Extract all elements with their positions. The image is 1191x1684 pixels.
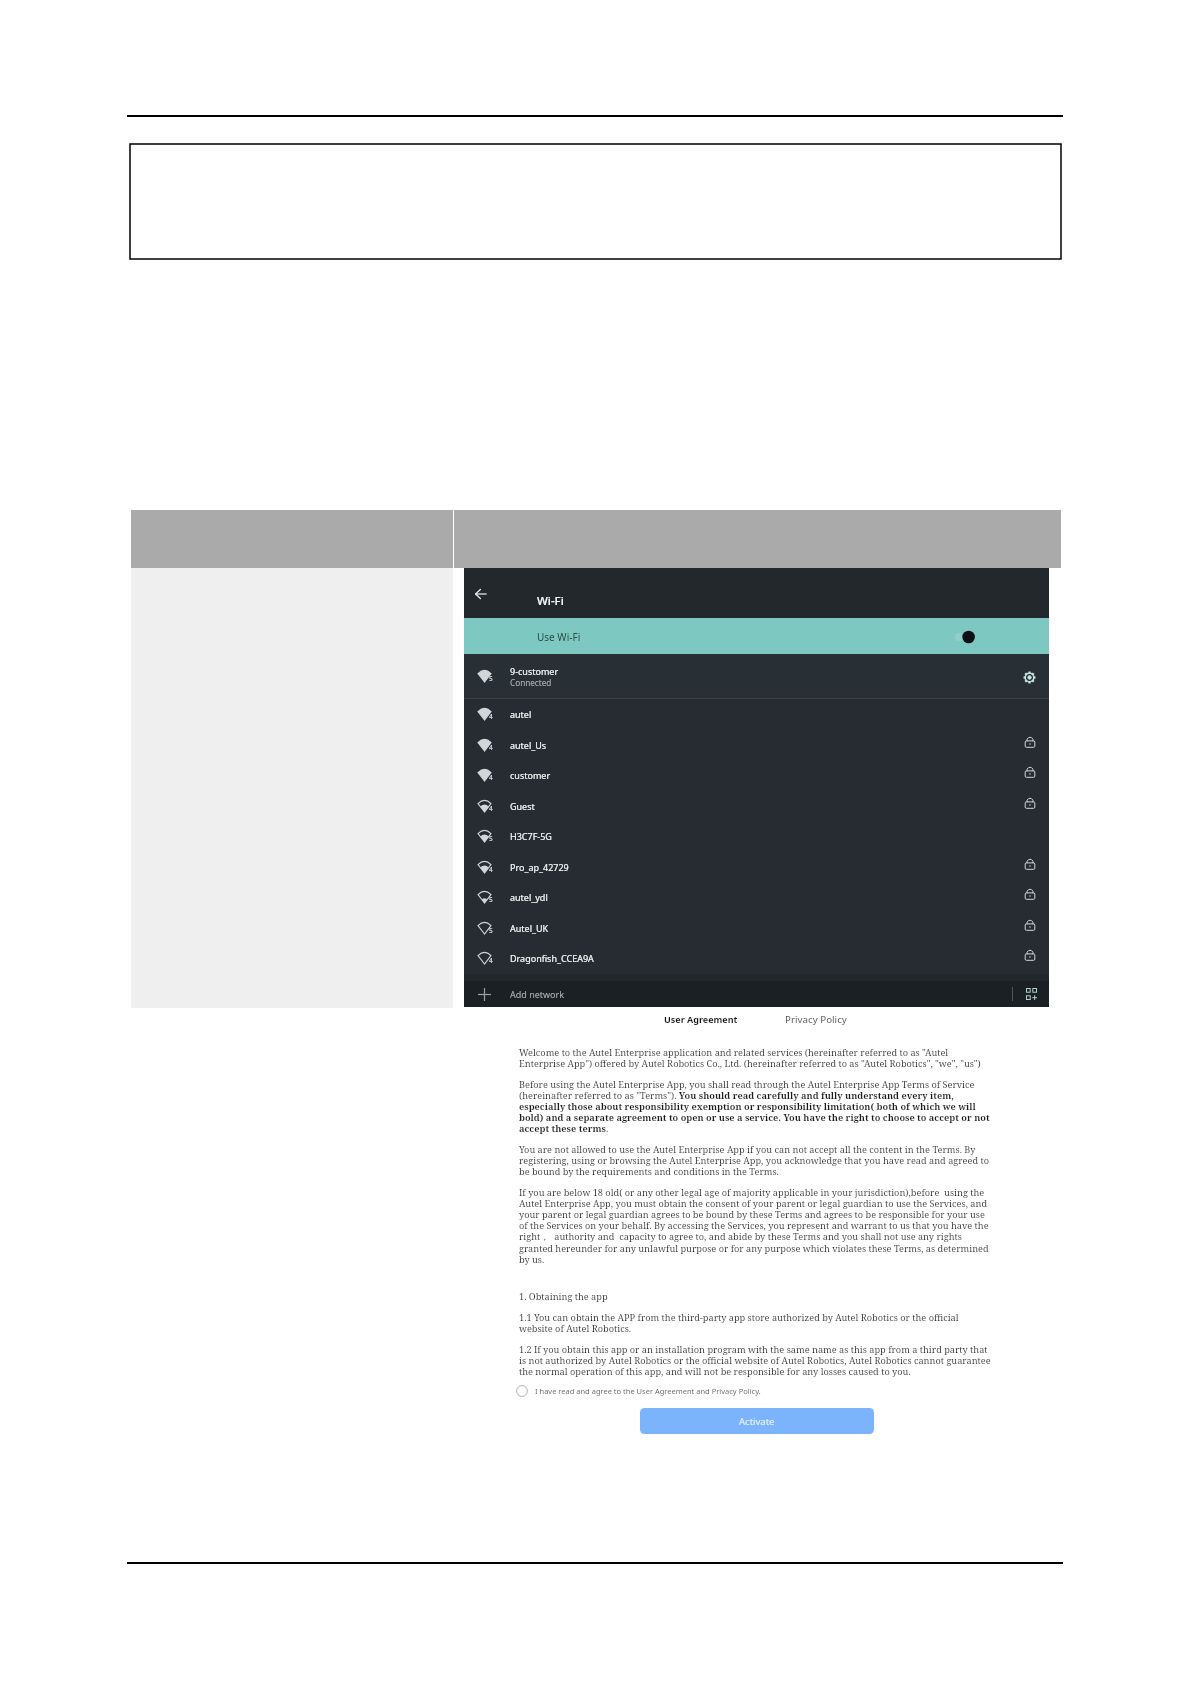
button[interactable]: I have read and agree to the User Agreem… [514,1383,763,1399]
staticText: autel_Us [510,739,547,751]
staticText: Use Wi-Fi [537,630,581,644]
staticText: 4 [489,804,493,813]
button[interactable]: User Agreement [659,1009,743,1029]
staticText: Dragonfish_CCEA9A [510,952,594,964]
staticText: 5 [489,834,493,843]
button[interactable]: 4 [464,730,1049,761]
staticText: 1.1 You can obtain the APP from the thir… [519,1311,991,1335]
button[interactable]: 5 [464,882,1049,913]
button[interactable]: Privacy Policy [780,1009,852,1030]
staticText: Wi-Fi [537,593,564,609]
staticText: Connected [510,677,552,688]
button[interactable]: 4 [464,791,1049,822]
staticText: Welcome to the Autel Enterprise applicat… [519,1046,991,1070]
button[interactable]: 4 [464,760,1049,791]
staticText: You are not allowed to use the Autel Ent… [519,1143,991,1178]
staticText: Before using the Autel Enterprise App, y… [519,1078,991,1135]
staticText: 1. Obtaining the app [519,1290,608,1303]
staticText: If you are below 18 old( or any other le… [519,1186,991,1266]
staticText: 5 [489,674,493,683]
button[interactable]: 4 [464,852,1049,883]
staticText: Add network [510,988,565,1000]
staticText: 9-customer [510,665,559,677]
button[interactable]: Network settings [1020,668,1039,687]
button[interactable]: Add network [464,981,1049,1007]
staticText: 5 [489,895,493,904]
staticText: 4 [489,865,493,874]
button[interactable]: Back [468,581,493,606]
staticText: I have read and agree to the User Agreem… [535,1386,761,1396]
button[interactable]: Use Wi-Fi [464,618,1049,654]
staticText: Pro_ap_42729 [510,861,569,873]
staticText: H3C7F-5G [510,830,552,842]
button[interactable]: Scan QR code [1024,987,1038,1001]
button[interactable]: Activate [640,1408,874,1434]
staticText: 5 [489,926,493,935]
staticText: Privacy Policy [785,1013,847,1026]
staticText: Guest [510,800,535,812]
staticText: autel_ydl [510,891,548,903]
staticText: 4 [489,712,493,721]
staticText: autel [510,708,532,720]
button[interactable]: 5 [464,654,1049,698]
staticText: 1.2 If you obtain this app or an install… [519,1343,991,1378]
staticText: customer [510,769,551,781]
button[interactable]: 5 [464,913,1049,944]
staticText: 4 [489,956,493,965]
staticText: Autel_UK [510,922,549,934]
button[interactable]: 4 [464,943,1049,974]
staticText: User Agreement [664,1013,738,1025]
button[interactable]: 5 [464,821,1049,852]
button[interactable]: 4 [464,699,1049,730]
staticText: 4 [489,743,493,752]
staticText: Activate [739,1415,775,1428]
staticText: 4 [489,773,493,782]
